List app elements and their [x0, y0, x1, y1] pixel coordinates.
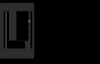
button[interactable]: App logo [0, 0, 100, 64]
